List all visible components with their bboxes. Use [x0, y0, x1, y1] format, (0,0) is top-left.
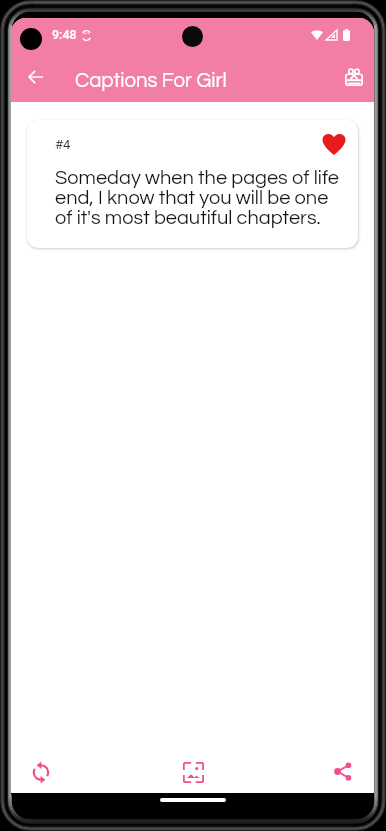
- button[interactable]: Share: [321, 750, 365, 794]
- button[interactable]: #4: [27, 120, 358, 248]
- button[interactable]: Refresh: [19, 750, 63, 794]
- button[interactable]: Favourite: [319, 129, 349, 159]
- button[interactable]: Back: [14, 56, 56, 98]
- staticText: Someday when the pages of life end, I kn…: [55, 168, 347, 228]
- staticText: Captions For Girl: [75, 70, 227, 91]
- staticText: #4: [55, 137, 71, 152]
- button[interactable]: Save image: [171, 750, 215, 794]
- staticText: 9:48: [52, 27, 77, 42]
- button[interactable]: Gift card: [335, 58, 372, 95]
